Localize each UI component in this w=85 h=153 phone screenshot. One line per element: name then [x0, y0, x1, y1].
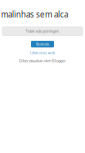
staticText: Beranda	[36, 42, 49, 46]
staticText: Lihat versi web	[30, 51, 55, 55]
button[interactable]: Lihat versi web	[0, 51, 85, 55]
staticText: Diberdayakan oleh Blogger.	[19, 58, 66, 63]
staticText: Tidak ada postingan.	[25, 29, 59, 34]
staticText: malinhas sem alca	[1, 9, 68, 20]
button[interactable]: Beranda	[31, 41, 54, 47]
